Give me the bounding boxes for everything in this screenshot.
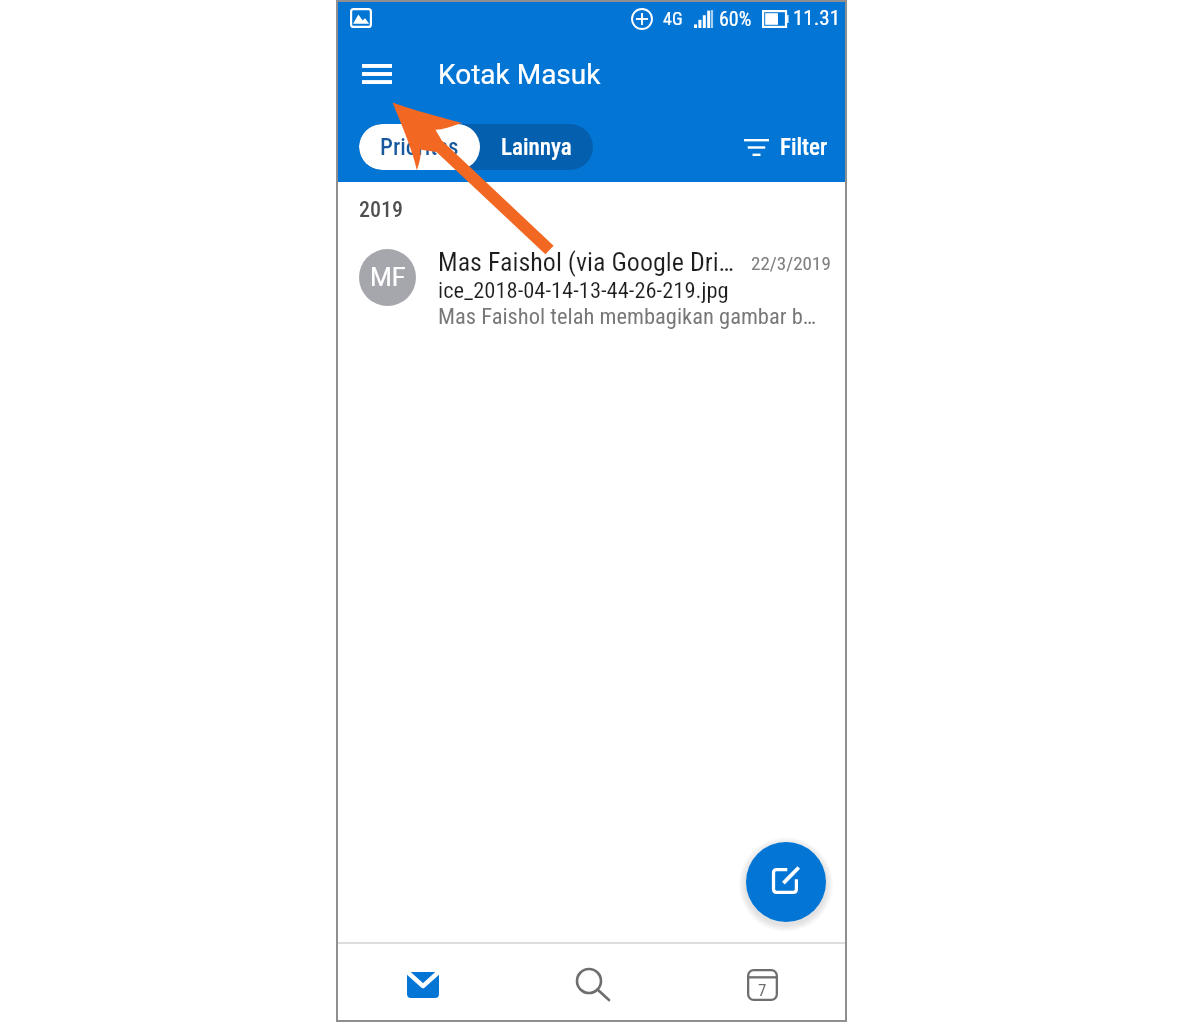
staticText: Mas Faishol (via Google Dri… [438, 247, 734, 277]
button[interactable]: Calendar [676, 944, 845, 1020]
staticText: 4G [663, 8, 683, 29]
staticText: 7 [758, 980, 767, 1000]
button[interactable]: Prioritas [359, 124, 480, 170]
staticText: 11.31 [793, 6, 841, 31]
staticText: Lainnya [501, 134, 572, 161]
staticText: 22/3/2019 [751, 252, 831, 274]
button[interactable]: Filter [744, 124, 828, 170]
staticText: 60% [719, 7, 752, 30]
staticText: Filter [780, 134, 828, 161]
button[interactable]: MF [338, 249, 845, 331]
button[interactable]: Open navigation drawer [352, 49, 401, 98]
button[interactable]: Search [507, 944, 676, 1020]
staticText: ice_2018-04-14-13-44-26-219.jpg [438, 277, 729, 303]
button[interactable]: Compose new message [746, 842, 826, 922]
staticText: MF [370, 263, 406, 292]
staticText: 2019 [359, 197, 403, 223]
staticText: Mas Faishol telah membagikan gambar b… [438, 303, 817, 329]
button[interactable]: Mail [338, 944, 507, 1020]
staticText: Prioritas [380, 134, 459, 161]
staticText: Kotak Masuk [438, 58, 601, 91]
button[interactable]: Lainnya [480, 124, 593, 170]
